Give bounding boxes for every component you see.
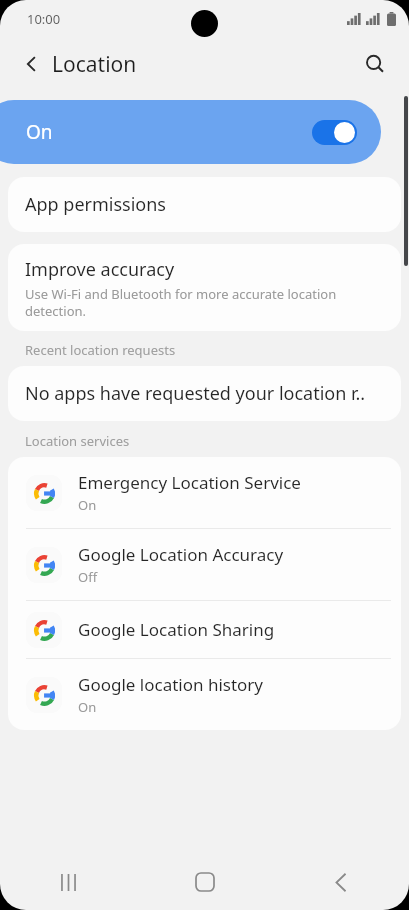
staticText: No apps have requested your location r.. (25, 381, 366, 406)
staticText: Use Wi-Fi and Bluetooth for more accurat… (25, 285, 383, 320)
button[interactable]: Emergency Location Service (8, 457, 401, 528)
staticText: Location (52, 50, 137, 79)
staticText: On (78, 496, 97, 514)
staticText: On (78, 698, 97, 716)
staticText: 10:00 (27, 10, 61, 28)
staticText: Google Location Sharing (78, 618, 275, 641)
staticText: Improve accuracy (25, 257, 175, 282)
staticText: Off (78, 568, 98, 586)
button[interactable]: Home (137, 854, 273, 910)
button[interactable]: No apps have requested your location r.. (8, 366, 401, 421)
button[interactable]: App permissions (8, 177, 401, 232)
button[interactable]: Improve accuracy (8, 244, 401, 331)
button[interactable]: Google Location Accuracy (8, 529, 401, 600)
staticText: Recent location requests (25, 341, 176, 359)
button[interactable]: On (0, 100, 381, 164)
button[interactable]: Back (14, 46, 50, 82)
staticText: App permissions (25, 192, 166, 217)
button[interactable]: Back (273, 854, 409, 910)
button[interactable]: Search (355, 44, 395, 84)
button[interactable]: Google Location Sharing (8, 601, 401, 658)
button[interactable]: Google location history (8, 659, 401, 730)
staticText: Google location history (78, 673, 264, 696)
staticText: Google Location Accuracy (78, 543, 284, 566)
staticText: Emergency Location Service (78, 471, 301, 494)
staticText: On (26, 119, 53, 145)
staticText: Location services (25, 432, 130, 450)
button[interactable]: Recents (0, 854, 137, 910)
